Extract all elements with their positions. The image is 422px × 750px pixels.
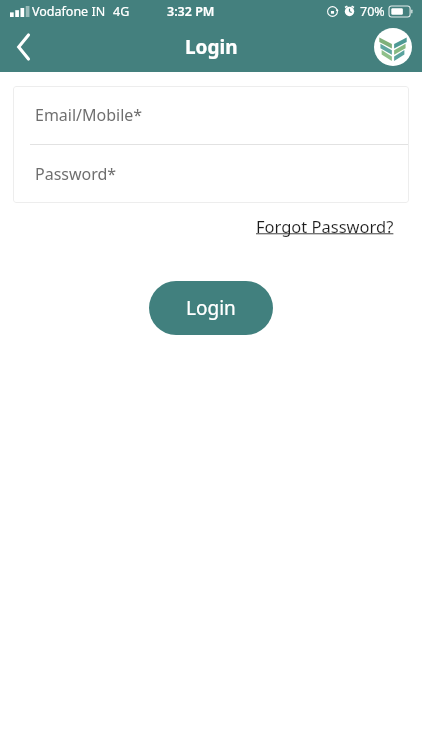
button[interactable]: Forgot Password?	[256, 215, 394, 237]
button[interactable]: Email/Mobile*	[13, 86, 409, 144]
staticText: Email/Mobile*	[35, 104, 143, 126]
staticText: Login	[185, 34, 238, 60]
staticText: 4G	[113, 3, 130, 20]
staticText: Login	[186, 295, 236, 321]
button[interactable]: Login	[149, 281, 273, 335]
button[interactable]: Back	[0, 23, 48, 71]
button[interactable]: App logo	[373, 27, 413, 67]
staticText: 70%	[360, 3, 385, 20]
staticText: 3:32 PM	[167, 3, 215, 20]
staticText: Forgot Password?	[256, 215, 394, 237]
button[interactable]: Password*	[13, 145, 409, 203]
staticText: Vodafone IN	[32, 3, 106, 20]
staticText: Password*	[35, 163, 117, 185]
